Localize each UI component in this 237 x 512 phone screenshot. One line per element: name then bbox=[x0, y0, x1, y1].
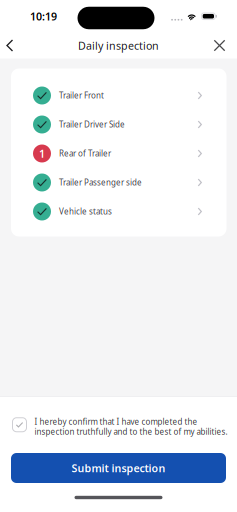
button[interactable]: Trailer Front bbox=[11, 81, 226, 110]
staticText: Rear of Trailer bbox=[59, 148, 111, 159]
button[interactable]: Submit inspection bbox=[11, 453, 226, 483]
button[interactable]: Back bbox=[3, 34, 17, 57]
button[interactable]: Close bbox=[208, 34, 234, 56]
button[interactable]: Vehicle status bbox=[11, 197, 226, 226]
button[interactable]: Confirm inspection truthfully bbox=[11, 416, 28, 433]
staticText: I hereby confirm that I have completed t… bbox=[34, 416, 197, 427]
button[interactable]: Trailer Driver Side bbox=[11, 110, 226, 139]
button[interactable]: 1 bbox=[11, 139, 226, 168]
staticText: Trailer Front bbox=[59, 90, 104, 101]
staticText: Trailer Passenger side bbox=[59, 177, 142, 188]
staticText: 10:19 bbox=[30, 9, 57, 23]
staticText: Submit inspection bbox=[71, 461, 165, 475]
staticText: Trailer Driver Side bbox=[59, 119, 125, 130]
button[interactable]: Trailer Passenger side bbox=[11, 168, 226, 197]
staticText: 1 bbox=[39, 146, 45, 161]
staticText: inspection truthfully and to the best of… bbox=[34, 426, 227, 437]
staticText: Daily inspection bbox=[78, 38, 159, 53]
staticText: Vehicle status bbox=[59, 206, 112, 217]
